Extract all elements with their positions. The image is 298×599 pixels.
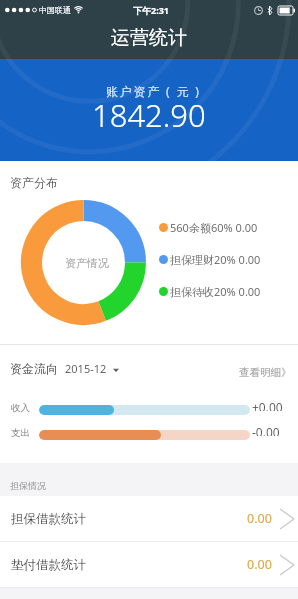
button[interactable]: 垫付借款统计 <box>0 542 298 587</box>
staticText: 2015-12 <box>65 361 107 376</box>
staticText: 担保待收20% 0.00 <box>170 284 261 299</box>
staticText: 账户资产 ( 元 ) <box>106 83 201 99</box>
staticText: 运营统计 <box>111 26 187 50</box>
button[interactable]: 担保借款统计 <box>0 496 298 541</box>
staticText: 担保借款统计 <box>11 511 86 527</box>
staticText: 资产情况 <box>65 256 109 270</box>
staticText: 0.00 <box>247 556 272 573</box>
staticText: 1842.90 <box>92 94 206 136</box>
staticText: 收入 <box>11 402 30 414</box>
staticText: -0.00 <box>252 424 280 436</box>
staticText: 560余额60% 0.00 <box>170 220 258 235</box>
staticText: 查看明细》 <box>239 366 292 379</box>
staticText: 中国联通 <box>39 5 71 15</box>
staticText: 下午2:31 <box>133 4 169 16</box>
staticText: 资金流向 <box>10 361 58 376</box>
staticText: 支出 <box>11 427 30 439</box>
staticText: 担保情况 <box>10 480 46 491</box>
button[interactable]: 查看明细》 <box>239 366 292 379</box>
other: 选择月份 <box>113 363 119 376</box>
staticText: 垫付借款统计 <box>11 557 86 573</box>
staticText: 资产分布 <box>10 175 58 190</box>
staticText: +0.00 <box>252 399 283 411</box>
staticText: 担保理财20% 0.00 <box>170 252 261 267</box>
staticText: 0.00 <box>247 510 272 527</box>
